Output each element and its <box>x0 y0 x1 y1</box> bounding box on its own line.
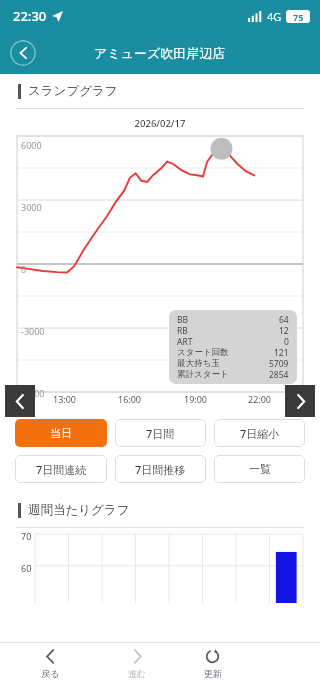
staticText: 4G <box>267 9 282 24</box>
staticText: 戻る <box>41 668 60 679</box>
staticText: 7日間 <box>146 426 175 441</box>
button[interactable]: Next day <box>285 385 315 417</box>
staticText: 5709 <box>269 358 289 369</box>
staticText: 週間当たりグラフ <box>28 502 130 518</box>
staticText: 7日間連続 <box>36 462 87 477</box>
staticText: 12 <box>279 325 289 336</box>
button[interactable]: 戻る <box>0 643 100 693</box>
staticText: 0 <box>21 263 27 275</box>
button[interactable]: Previous day <box>5 385 35 417</box>
staticText: スタート回数 <box>177 347 229 358</box>
staticText: 7日縮小 <box>240 426 280 441</box>
staticText: 60 <box>21 562 32 574</box>
staticText: -3000 <box>21 325 45 337</box>
button[interactable]: 7日縮小 <box>214 419 305 447</box>
button[interactable]: Back <box>10 40 36 66</box>
staticText: アミューズ吹田岸辺店 <box>94 45 226 61</box>
staticText: 最大持ち玉 <box>177 358 220 369</box>
staticText: 一覧 <box>249 462 271 476</box>
staticText: 2854 <box>269 369 289 380</box>
staticText: 16:00 <box>118 393 142 405</box>
button[interactable]: 進む <box>100 643 175 693</box>
staticText: ART <box>177 336 193 347</box>
staticText: 22:30 <box>13 7 47 25</box>
staticText: 6000 <box>21 139 42 151</box>
staticText: 13:00 <box>53 393 77 405</box>
button[interactable]: 更新 <box>175 643 250 693</box>
staticText: 進む <box>128 668 147 679</box>
staticText: BB <box>177 314 189 325</box>
staticText: 当日 <box>50 426 72 440</box>
button[interactable]: 一覧 <box>214 455 305 483</box>
staticText: 75 <box>293 11 304 23</box>
staticText: スランプグラフ <box>28 83 118 99</box>
staticText: 64 <box>279 314 289 325</box>
staticText: 3000 <box>21 201 42 213</box>
staticText: 22:00 <box>248 393 272 405</box>
staticText: 2026/02/17 <box>0 117 320 130</box>
staticText: 0 <box>284 336 289 347</box>
staticText: 7日間推移 <box>135 462 186 477</box>
staticText: -6000 <box>21 387 45 399</box>
staticText: 70 <box>21 530 32 542</box>
staticText: 累計スタート <box>177 369 229 380</box>
button[interactable]: 7日間連続 <box>15 455 107 483</box>
staticText: 19:00 <box>184 393 208 405</box>
staticText: 更新 <box>204 668 222 679</box>
staticText: RB <box>177 325 188 336</box>
button[interactable]: 当日 <box>15 419 107 447</box>
staticText: 121 <box>274 347 289 358</box>
button[interactable]: 7日間推移 <box>115 455 206 483</box>
button[interactable]: 7日間 <box>115 419 206 447</box>
